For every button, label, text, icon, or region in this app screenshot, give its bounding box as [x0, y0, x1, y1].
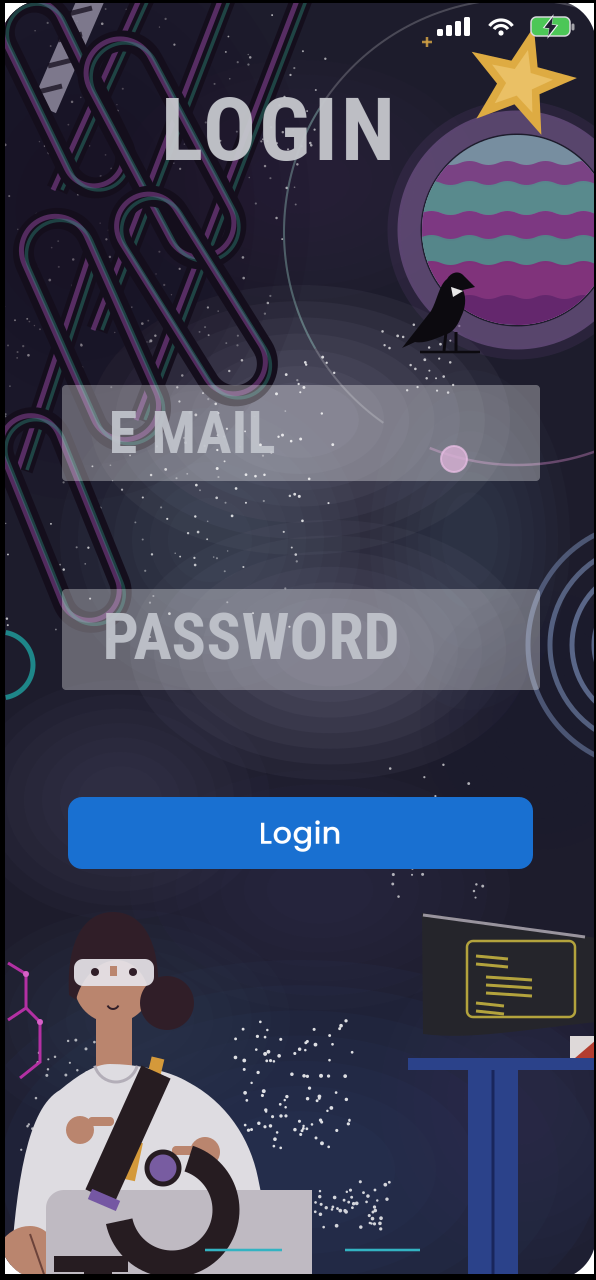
staticText: E MAIL — [108, 399, 275, 467]
staticText: Login — [258, 811, 341, 854]
staticText: PASSWORD — [102, 599, 399, 674]
staticText: LOGIN — [161, 78, 395, 181]
